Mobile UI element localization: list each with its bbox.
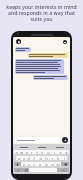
staticText: i — [54, 150, 55, 154]
staticText: d — [27, 156, 30, 160]
button[interactable]: k — [55, 156, 61, 160]
staticText: k — [57, 156, 59, 160]
button[interactable]: v — [37, 162, 43, 166]
button[interactable]: Profile — [16, 39, 21, 44]
staticText: j — [52, 156, 53, 160]
button[interactable] — [15, 137, 61, 143]
staticText: a — [18, 156, 20, 160]
button[interactable]: Backspace — [61, 162, 69, 166]
button[interactable]: u — [45, 150, 51, 154]
button[interactable]: t — [34, 150, 39, 154]
staticText: b — [45, 162, 48, 166]
button[interactable]: r — [29, 150, 34, 154]
button[interactable]: Emoji — [23, 168, 29, 172]
button[interactable]: a — [16, 156, 21, 160]
button[interactable] — [33, 75, 68, 80]
button[interactable]: j — [49, 156, 55, 160]
staticText: w — [20, 150, 23, 154]
staticText: p — [65, 150, 68, 154]
staticText: l — [64, 156, 65, 160]
button[interactable]: n — [49, 162, 55, 166]
button[interactable]: More options — [63, 40, 67, 44]
button[interactable]: Enter — [57, 168, 69, 172]
button[interactable]: f — [31, 156, 37, 160]
button[interactable]: o — [57, 150, 63, 154]
staticText: z — [23, 162, 25, 166]
button[interactable] — [51, 147, 69, 148]
staticText: e — [26, 150, 28, 154]
staticText: y — [41, 150, 43, 154]
staticText: u — [47, 150, 50, 154]
staticText: t — [36, 150, 38, 154]
button[interactable] — [15, 47, 31, 52]
button[interactable] — [15, 59, 64, 74]
staticText: s — [23, 156, 25, 160]
button[interactable]: c — [31, 162, 37, 166]
staticText: c — [33, 162, 35, 166]
button[interactable]: Shift — [14, 162, 21, 166]
staticText: o — [59, 150, 62, 154]
button[interactable]: i — [51, 150, 57, 154]
staticText: h — [45, 156, 48, 160]
button[interactable]: x — [26, 162, 31, 166]
button[interactable]: l — [61, 156, 67, 160]
button[interactable]: g — [37, 156, 43, 160]
button[interactable]: y — [39, 150, 45, 154]
staticText: v — [39, 162, 41, 166]
button[interactable]: d — [26, 156, 31, 160]
button[interactable]: p — [63, 150, 69, 154]
button[interactable]: Numbers — [14, 168, 23, 172]
staticText: x — [28, 162, 30, 166]
staticText: g — [39, 156, 42, 160]
staticText: q — [15, 150, 18, 154]
button[interactable]: w — [19, 150, 24, 154]
staticText: keeps your interests in mind and respond… — [6, 3, 77, 23]
button[interactable]: z — [21, 162, 26, 166]
button[interactable]: e — [24, 150, 29, 154]
button[interactable]: b — [43, 162, 49, 166]
staticText: r — [31, 150, 33, 154]
button[interactable]: h — [43, 156, 49, 160]
button[interactable]: q — [14, 150, 19, 154]
button[interactable]: m — [55, 162, 61, 166]
staticText: n — [51, 162, 54, 166]
staticText: m — [56, 162, 60, 166]
button[interactable] — [28, 53, 68, 58]
button[interactable]: Send — [62, 137, 68, 143]
button[interactable] — [14, 147, 33, 148]
button[interactable] — [33, 147, 51, 148]
button[interactable]: s — [21, 156, 26, 160]
staticText: f — [33, 156, 35, 160]
